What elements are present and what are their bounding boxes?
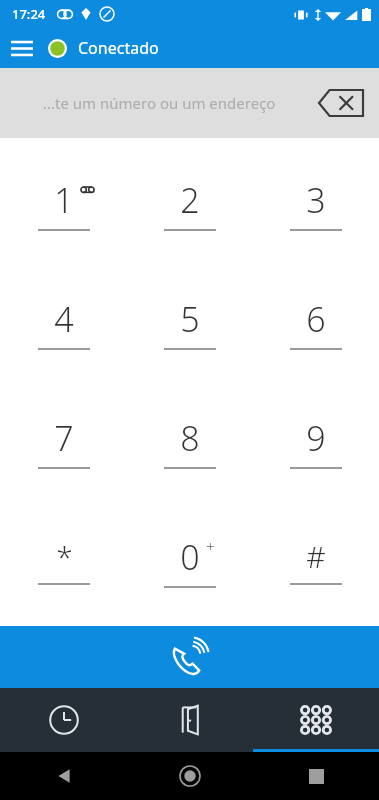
staticText: 2 (180, 177, 200, 223)
staticText: 0 (180, 534, 200, 580)
button[interactable]: 6 (253, 263, 379, 382)
button[interactable]: Backspace (313, 83, 369, 123)
staticText: 5 (180, 296, 200, 342)
button[interactable]: 1 (0, 144, 127, 263)
button[interactable]: 9 (253, 382, 379, 501)
staticText: 6 (306, 296, 326, 342)
staticText: ...te um número ou um endereço (43, 93, 276, 113)
button[interactable]: Menu (0, 28, 44, 68)
staticText: + (206, 536, 215, 556)
staticText: 4 (54, 296, 74, 342)
button[interactable]: Recents (253, 752, 379, 800)
staticText: 1 (54, 177, 74, 223)
staticText: # (306, 536, 326, 577)
staticText: 17:24 (12, 5, 46, 23)
button[interactable]: * (0, 501, 127, 620)
button[interactable]: 4 (0, 263, 127, 382)
button[interactable]: 0 (127, 501, 253, 620)
staticText: 9 (306, 415, 326, 461)
button[interactable]: Call (0, 626, 379, 688)
button[interactable]: 2 (127, 144, 253, 263)
button[interactable]: Home (127, 752, 253, 800)
button[interactable]: Back (0, 752, 127, 800)
button[interactable]: Dialpad (253, 688, 379, 752)
staticText: 3 (306, 177, 326, 223)
button[interactable]: 3 (253, 144, 379, 263)
button[interactable]: 7 (0, 382, 127, 501)
staticText: 7 (54, 415, 74, 461)
button[interactable]: 5 (127, 263, 253, 382)
button[interactable]: Exit (127, 688, 253, 752)
button[interactable]: 8 (127, 382, 253, 501)
staticText: * (56, 536, 73, 577)
button[interactable]: # (253, 501, 379, 620)
button[interactable]: Recent calls (0, 688, 127, 752)
button[interactable]: Status (44, 35, 70, 61)
staticText: 8 (180, 415, 200, 461)
staticText: Conectado (78, 37, 159, 59)
